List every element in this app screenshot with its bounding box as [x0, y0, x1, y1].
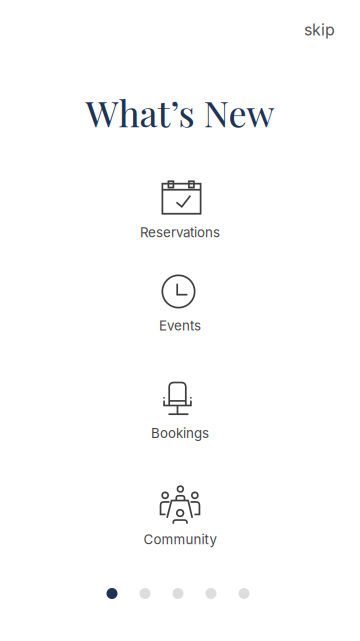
staticText: Reservations	[140, 224, 220, 240]
button[interactable]: skip	[294, 12, 345, 47]
staticText: Bookings	[151, 425, 209, 441]
staticText: skip	[304, 20, 335, 39]
button[interactable]: Reservations	[0, 180, 360, 240]
button[interactable]: Community	[0, 485, 360, 547]
staticText: What’s New	[85, 88, 274, 136]
button[interactable]: Events	[0, 274, 360, 334]
staticText: Community	[143, 531, 216, 547]
staticText: Events	[159, 317, 201, 334]
button[interactable]: Bookings	[0, 382, 360, 441]
